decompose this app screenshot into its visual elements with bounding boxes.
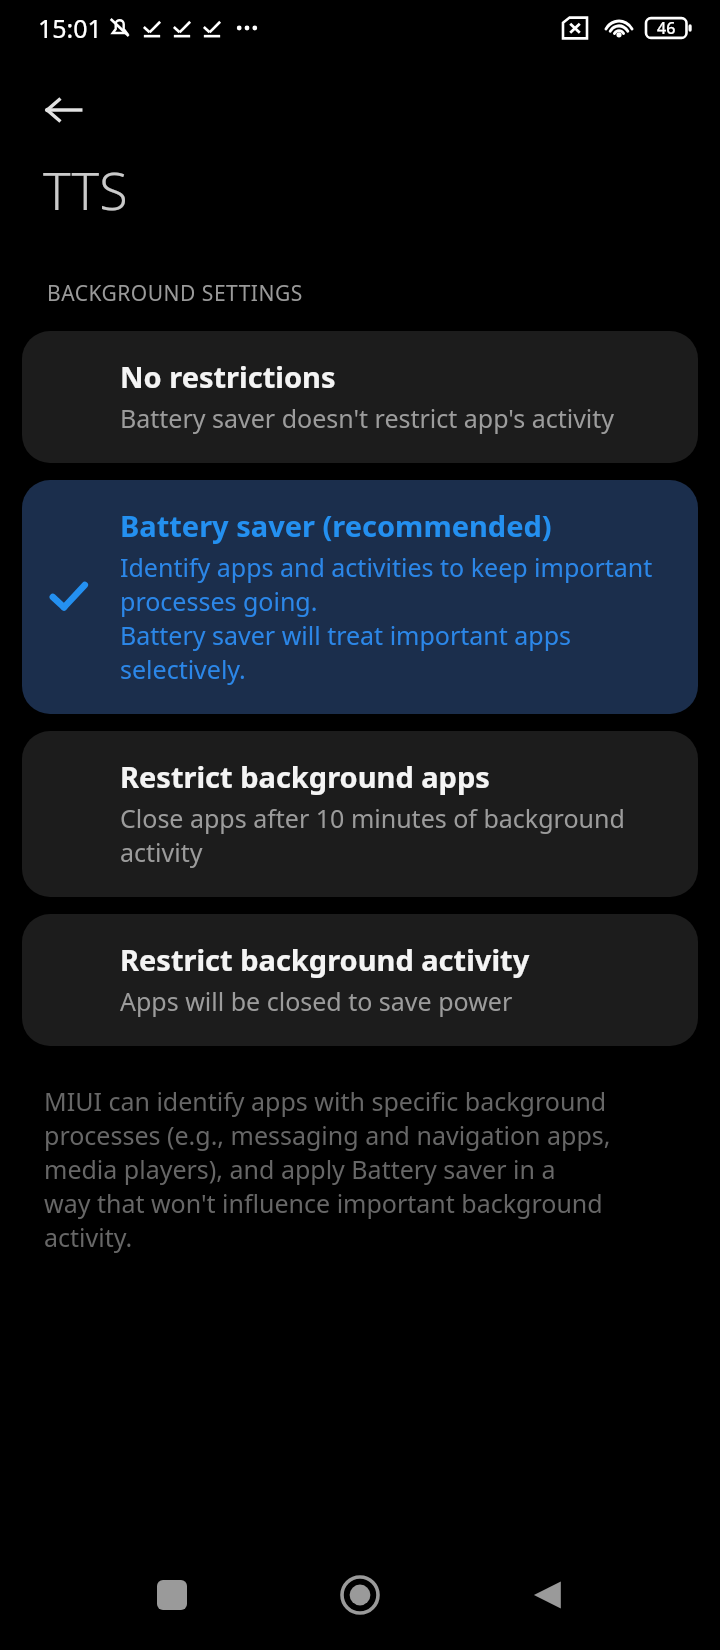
button[interactable]: Back — [516, 1563, 580, 1627]
button[interactable]: Recent apps — [140, 1563, 204, 1627]
staticText: selectively. — [120, 652, 246, 686]
staticText: Battery saver will treat important apps — [120, 618, 572, 652]
staticText: processes going. — [120, 584, 318, 618]
staticText: activity — [120, 835, 203, 869]
staticText: No restrictions — [120, 357, 336, 396]
button[interactable]: Back — [30, 76, 98, 144]
button[interactable]: Battery saver (recommended) — [22, 480, 698, 714]
staticText: Identify apps and activities to keep imp… — [120, 550, 653, 584]
staticText: TTS — [43, 154, 128, 225]
button[interactable]: Restrict background apps — [22, 731, 698, 897]
staticText: Restrict background activity — [120, 940, 530, 979]
staticText: Apps will be closed to save power — [120, 984, 513, 1018]
staticText: way that won't influence important backg… — [44, 1186, 603, 1220]
staticText: media players), and apply Battery saver … — [44, 1152, 556, 1186]
staticText: MIUI can identify apps with specific bac… — [44, 1084, 607, 1118]
button[interactable]: Restrict background activity — [22, 914, 698, 1046]
staticText: BACKGROUND SETTINGS — [47, 279, 303, 308]
staticText: activity. — [44, 1220, 133, 1254]
staticText: Battery saver doesn't restrict app's act… — [120, 401, 615, 435]
staticText: Battery saver (recommended) — [120, 506, 552, 545]
staticText: Close apps after 10 minutes of backgroun… — [120, 801, 625, 835]
staticText: processes (e.g., messaging and navigatio… — [44, 1118, 611, 1152]
button[interactable]: No restrictions — [22, 331, 698, 463]
staticText: 15:01 — [38, 11, 102, 45]
staticText: Restrict background apps — [120, 757, 490, 796]
button[interactable]: Home — [328, 1563, 392, 1627]
staticText: 46 — [657, 17, 676, 39]
